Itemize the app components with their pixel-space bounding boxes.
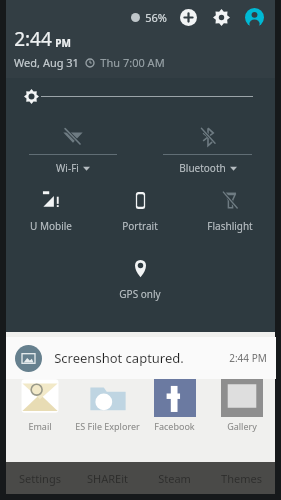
staticText: Email	[28, 420, 52, 432]
button[interactable]: Flashlight	[185, 184, 275, 242]
staticText: Screenshot captured.	[54, 349, 184, 367]
staticText: 2:44	[14, 26, 52, 52]
staticText: Steam	[158, 471, 191, 486]
staticText: Discord	[157, 350, 193, 364]
button[interactable]: Wi-Fi	[6, 114, 140, 180]
staticText: Downloads	[215, 350, 268, 364]
staticText: SHAREit	[87, 471, 128, 486]
staticText: Wed, Aug 31	[14, 55, 79, 70]
staticText: Settings	[19, 471, 61, 486]
staticText: ES File Explorer	[75, 420, 140, 432]
button[interactable]: GPS only	[95, 252, 185, 306]
staticText: Portrait	[122, 219, 158, 233]
button[interactable]: Screenshot captured.	[6, 337, 276, 379]
button[interactable]: Add user	[178, 7, 198, 27]
button[interactable]: Bluetooth	[140, 114, 275, 180]
button[interactable]: Themes	[208, 462, 275, 494]
staticText: Thu 7:00 AM	[100, 55, 165, 70]
button[interactable]	[74, 375, 141, 417]
button[interactable]: User profile	[244, 7, 265, 28]
staticText: Gallery	[227, 420, 257, 432]
button[interactable]: Settings	[211, 7, 231, 27]
staticText: Bluetooth	[179, 161, 226, 175]
staticText: Wi-Fi	[56, 161, 79, 175]
staticText: 56%	[145, 10, 167, 25]
button[interactable]: SHAREit	[74, 462, 141, 494]
button[interactable]: U Mobile	[6, 184, 95, 242]
staticText: GPS only	[119, 287, 161, 301]
button[interactable]: Brightness	[24, 89, 39, 104]
button[interactable]: Steam	[141, 462, 208, 494]
staticText: PM	[55, 36, 71, 50]
button[interactable]	[6, 375, 74, 417]
staticText: Contacts	[87, 350, 128, 364]
staticText: Flashlight	[207, 219, 253, 233]
button[interactable]: Settings	[6, 462, 74, 494]
button[interactable]: Clock	[6, 338, 74, 368]
button[interactable]: Downloads	[208, 338, 275, 368]
button[interactable]	[208, 375, 275, 417]
staticText: Facebook	[154, 420, 195, 432]
staticText: Themes	[221, 471, 262, 486]
staticText: U Mobile	[30, 219, 72, 233]
button[interactable]: Contacts	[74, 338, 141, 368]
button[interactable]: Portrait	[95, 184, 185, 242]
button[interactable]: Discord	[141, 338, 208, 368]
button[interactable]	[141, 375, 208, 417]
staticText: 2:44 PM	[229, 351, 267, 365]
staticText: Clock	[27, 350, 53, 364]
